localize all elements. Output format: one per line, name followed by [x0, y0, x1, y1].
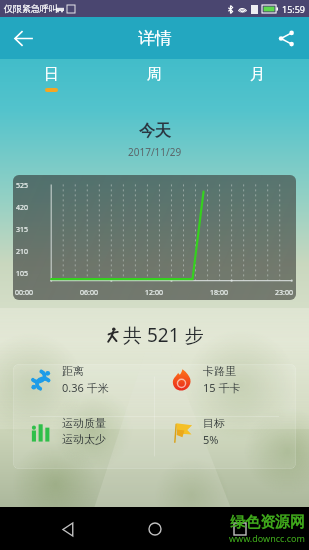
staticText: 5% — [203, 432, 219, 447]
button[interactable]: 月 — [206, 59, 309, 92]
button[interactable]: 目标 — [154, 416, 296, 447]
button[interactable]: 运动质量 — [13, 416, 154, 446]
staticText: 105 — [16, 269, 29, 279]
staticText: 距离 — [62, 364, 84, 378]
staticText: 仅限紧急呼叫 — [4, 3, 58, 14]
button[interactable]: Share — [269, 21, 303, 55]
staticText: 315 — [16, 225, 29, 235]
staticText: 15:59 — [282, 3, 306, 15]
button[interactable]: Recents — [223, 512, 257, 546]
staticText: 18:00 — [210, 288, 228, 298]
staticText: 共 521 步 — [123, 322, 204, 348]
staticText: 210 — [16, 247, 29, 257]
button[interactable]: 525 — [13, 175, 296, 300]
staticText: 月 — [250, 65, 265, 84]
staticText: 运动太少 — [62, 432, 106, 446]
staticText: 绿色资源网 — [230, 513, 305, 532]
staticText: 运动质量 — [62, 416, 106, 430]
staticText: 详情 — [138, 28, 172, 49]
staticText: 15 千卡 — [203, 380, 241, 395]
staticText: 0.36 千米 — [62, 380, 109, 395]
staticText: 2017/11/29 — [128, 145, 182, 159]
staticText: 06:00 — [80, 288, 98, 298]
staticText: 12:00 — [145, 288, 163, 298]
button[interactable]: 日 — [0, 59, 103, 92]
staticText: 目标 — [203, 416, 225, 430]
staticText: 23:00 — [275, 288, 293, 298]
staticText: 周 — [147, 65, 162, 84]
staticText: 00:00 — [15, 288, 33, 298]
staticText: www.downcc.com — [229, 532, 305, 544]
button[interactable]: Home — [138, 512, 172, 546]
staticText: 日 — [44, 65, 59, 84]
button[interactable]: Back — [52, 512, 86, 546]
button[interactable]: 卡路里 — [154, 364, 296, 395]
button[interactable]: 距离 — [13, 364, 154, 395]
button[interactable]: Back — [6, 21, 40, 55]
staticText: 今天 — [139, 121, 171, 141]
staticText: 525 — [16, 181, 29, 191]
button[interactable]: 周 — [103, 59, 206, 92]
staticText: 420 — [16, 203, 29, 213]
staticText: 卡路里 — [203, 364, 236, 378]
